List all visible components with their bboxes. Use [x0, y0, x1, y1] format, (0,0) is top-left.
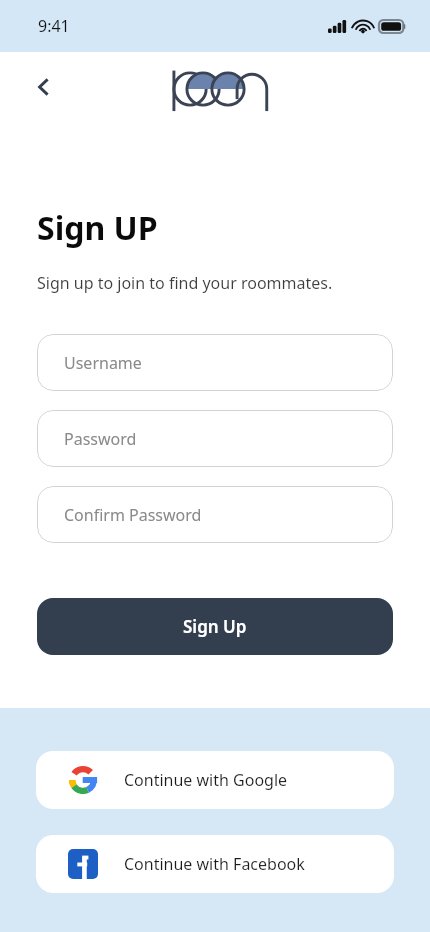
button[interactable]: Password	[37, 410, 393, 467]
staticText: Confirm Password	[64, 504, 202, 526]
staticText: Continue with Facebook	[124, 853, 305, 875]
button[interactable]: Back	[22, 65, 66, 109]
staticText: Username	[64, 352, 142, 374]
staticText: Sign Up	[183, 615, 247, 638]
staticText: Sign UP	[37, 206, 158, 250]
staticText: Password	[64, 428, 137, 450]
button[interactable]: Username	[37, 334, 393, 391]
button[interactable]: Sign Up	[37, 598, 393, 655]
button[interactable]: Continue with Google	[36, 751, 394, 809]
button[interactable]: Confirm Password	[37, 486, 393, 543]
staticText: Sign up to join to find your roommates.	[37, 272, 333, 294]
button[interactable]: Continue with Facebook	[36, 835, 394, 893]
staticText: Continue with Google	[124, 769, 288, 791]
staticText: 9:41	[38, 15, 70, 37]
